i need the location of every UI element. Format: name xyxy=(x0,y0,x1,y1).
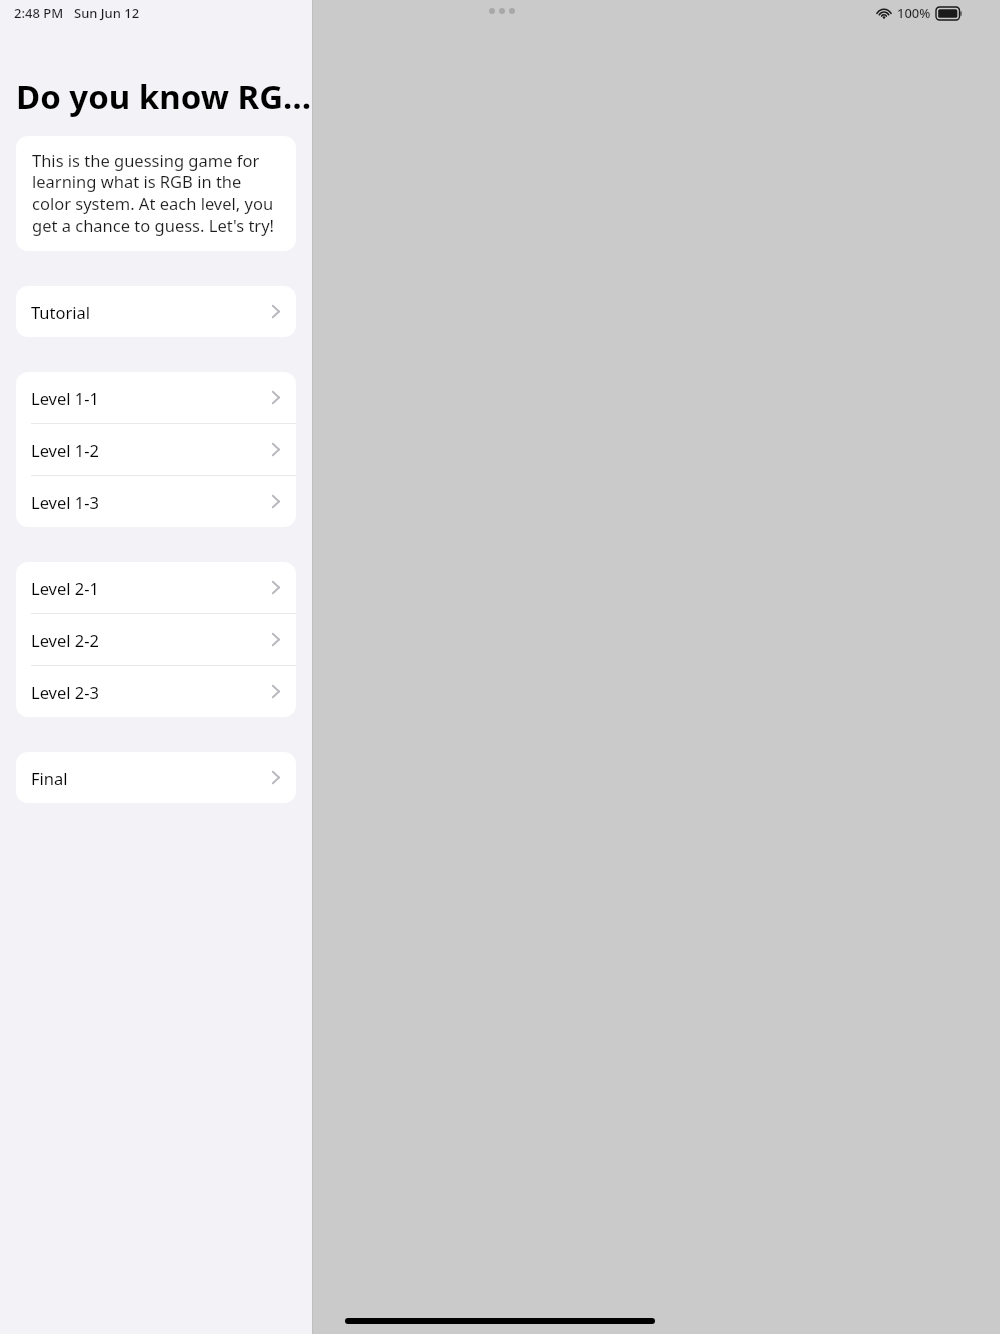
button[interactable]: Level 2-3 xyxy=(16,666,296,717)
other: Open Level 1-2 xyxy=(271,441,281,458)
staticText: Tutorial xyxy=(31,301,91,323)
button[interactable]: Tutorial xyxy=(16,286,296,337)
button[interactable]: Level 1-1 xyxy=(16,372,296,423)
other: Open Level 2-3 xyxy=(271,683,281,700)
staticText: Level 2-2 xyxy=(31,629,100,651)
staticText: Level 2-1 xyxy=(31,577,100,599)
staticText: 100% xyxy=(897,4,931,22)
staticText: Final xyxy=(31,767,68,789)
staticText: Level 1-1 xyxy=(31,387,100,409)
staticText: This is the guessing game for learning w… xyxy=(32,149,284,237)
other: Open Level 2-1 xyxy=(271,579,281,596)
other: Open Level 2-2 xyxy=(271,631,281,648)
other: Open Level 1-3 xyxy=(271,493,281,510)
other: Open Level 1-1 xyxy=(271,389,281,406)
staticText: Level 2-3 xyxy=(31,681,100,703)
button[interactable]: Level 1-3 xyxy=(16,476,296,527)
staticText: Level 1-2 xyxy=(31,439,100,461)
button[interactable]: Level 1-2 xyxy=(16,424,296,475)
staticText: Level 1-3 xyxy=(31,491,100,513)
staticText: Do you know RG… xyxy=(16,74,312,119)
staticText: Sun Jun 12 xyxy=(74,4,140,22)
staticText: 2:48 PM xyxy=(14,4,64,22)
other: Open Final xyxy=(271,769,281,786)
button[interactable]: Level 2-1 xyxy=(16,562,296,613)
button[interactable]: Final xyxy=(16,752,296,803)
other: Open Tutorial xyxy=(271,303,281,320)
button[interactable]: Level 2-2 xyxy=(16,614,296,665)
